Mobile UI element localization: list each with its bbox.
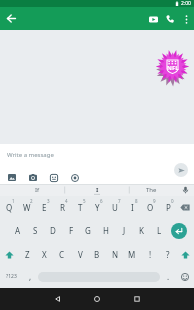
staticText: Y (95, 202, 100, 213)
button[interactable]: C (53, 243, 71, 266)
button[interactable]: W (18, 196, 36, 219)
staticText: Z (25, 249, 30, 260)
button[interactable]: J (115, 219, 133, 242)
button[interactable]: Y (88, 196, 106, 219)
button[interactable] (163, 219, 194, 242)
button[interactable]: ! (141, 243, 159, 266)
staticText: S (33, 225, 38, 236)
staticText: NFL (167, 64, 179, 72)
staticText: If (35, 186, 40, 194)
staticText: B (94, 249, 100, 260)
staticText: 3 (47, 198, 50, 204)
staticText: D (50, 225, 56, 236)
staticText: 1 (12, 198, 15, 204)
button[interactable]: Z (18, 243, 36, 266)
button[interactable]: G (79, 219, 97, 242)
staticText: ! (149, 249, 152, 260)
button[interactable]: R (53, 196, 71, 219)
button[interactable]: Write a message (7, 151, 54, 159)
staticText: R (60, 202, 65, 213)
button[interactable] (146, 12, 160, 26)
staticText: The (146, 186, 157, 194)
staticText: ?123 (6, 273, 17, 280)
staticText: 2:00 (181, 0, 191, 7)
button[interactable]: If (10, 184, 64, 196)
staticText: . (167, 271, 170, 282)
button[interactable]: F (62, 219, 80, 242)
staticText: F (69, 225, 74, 236)
staticText: 2 (30, 198, 33, 204)
button[interactable] (4, 11, 19, 26)
staticText: Q (6, 202, 13, 213)
staticText: W (23, 202, 31, 213)
staticText: E (42, 202, 47, 213)
staticText: L (157, 225, 162, 236)
button[interactable]: E (35, 196, 53, 219)
button[interactable]: I (123, 196, 141, 219)
button[interactable]: , (21, 265, 39, 288)
staticText: M (128, 249, 136, 260)
button[interactable] (67, 170, 82, 185)
button[interactable] (82, 288, 112, 310)
staticText: 9 (153, 198, 156, 204)
staticText: X (42, 249, 47, 260)
button[interactable] (122, 288, 152, 310)
staticText: T (78, 202, 83, 213)
button[interactable]: Q (0, 196, 18, 219)
staticText: C (59, 249, 65, 260)
button[interactable]: O (141, 196, 159, 219)
staticText: N (112, 249, 119, 260)
button[interactable]: H (97, 219, 115, 242)
button[interactable]: A (9, 219, 27, 242)
button[interactable] (163, 12, 177, 26)
button[interactable] (25, 170, 40, 185)
staticText: 5 (83, 198, 86, 204)
button[interactable] (180, 13, 192, 25)
staticText: A (15, 225, 21, 236)
button[interactable]: L (150, 219, 168, 242)
button[interactable]: . (159, 265, 177, 288)
button[interactable]: V (71, 243, 89, 266)
button[interactable]: ?123 (0, 265, 22, 288)
button[interactable]: K (132, 219, 150, 242)
button[interactable] (176, 243, 194, 266)
staticText: 8 (135, 198, 138, 204)
staticText: I (96, 186, 99, 194)
staticText: V (78, 249, 83, 260)
button[interactable] (176, 196, 194, 219)
staticText: ? (166, 249, 170, 260)
staticText: P (166, 202, 171, 213)
button[interactable]: T (71, 196, 89, 219)
button[interactable] (42, 288, 72, 310)
staticText: U (112, 202, 118, 213)
staticText: 0 (171, 198, 174, 204)
button[interactable]: S (26, 219, 44, 242)
button[interactable]: ? (159, 243, 177, 266)
button[interactable]: B (88, 243, 106, 266)
staticText: 6 (100, 198, 103, 204)
staticText: , (29, 271, 32, 282)
staticText: 4 (65, 198, 68, 204)
button[interactable]: M (123, 243, 141, 266)
button[interactable] (176, 265, 194, 288)
staticText: I (131, 202, 134, 213)
button[interactable]: I (65, 184, 129, 196)
button[interactable]: D (44, 219, 62, 242)
staticText: O (147, 202, 154, 213)
button[interactable] (0, 243, 18, 266)
button[interactable] (46, 170, 61, 185)
staticText: 7 (118, 198, 121, 204)
staticText: H (103, 225, 109, 236)
staticText: J (123, 225, 126, 236)
button[interactable]: X (35, 243, 53, 266)
button[interactable]: U (106, 196, 124, 219)
button[interactable] (174, 163, 188, 177)
staticText: G (85, 225, 91, 236)
staticText: K (139, 225, 144, 236)
button[interactable]: The (130, 184, 172, 196)
button[interactable]: P (159, 196, 177, 219)
button[interactable]: N (106, 243, 124, 266)
button[interactable] (4, 170, 19, 185)
